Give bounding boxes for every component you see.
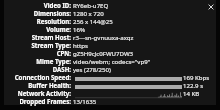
staticText: DASH: — [52, 65, 71, 73]
staticText: 13/1635 — [73, 97, 97, 105]
staticText: 122.9 s — [183, 81, 204, 89]
staticText: CPN: — [56, 49, 71, 57]
staticText: Resolution: — [36, 17, 71, 25]
button[interactable]: Close stats — [206, 2, 216, 12]
staticText: r3---sn-gvnuuxa-axqz — [73, 33, 134, 41]
staticText: Stream Host: — [31, 33, 71, 41]
staticText: Dimensions: — [33, 9, 71, 17]
staticText: Volume: — [46, 25, 71, 33]
staticText: video/webm; codecs="vp9" — [73, 57, 151, 65]
staticText: Connection Speed: — [14, 73, 71, 81]
staticText: Mime Type: — [36, 57, 71, 65]
staticText: Video ID: — [43, 1, 71, 9]
staticText: 14 KB — [183, 89, 200, 97]
staticText: 256 x 144@25 — [73, 17, 113, 25]
staticText: gZ5H9cJc0FWU7DW3 — [73, 49, 134, 57]
staticText: 1280 x 720 — [73, 9, 104, 17]
staticText: 16% — [73, 25, 86, 33]
staticText: Buffer Health: — [28, 81, 71, 89]
staticText: https — [73, 41, 88, 49]
staticText: Network Activity: — [17, 89, 71, 97]
staticText: 169 Kbps — [183, 73, 210, 81]
staticText: yes (278/250) — [73, 65, 111, 73]
staticText: Stream Type: — [31, 41, 71, 49]
staticText: RY6eb-u7EQ — [73, 1, 109, 9]
staticText: Dropped Frames: — [19, 97, 71, 105]
